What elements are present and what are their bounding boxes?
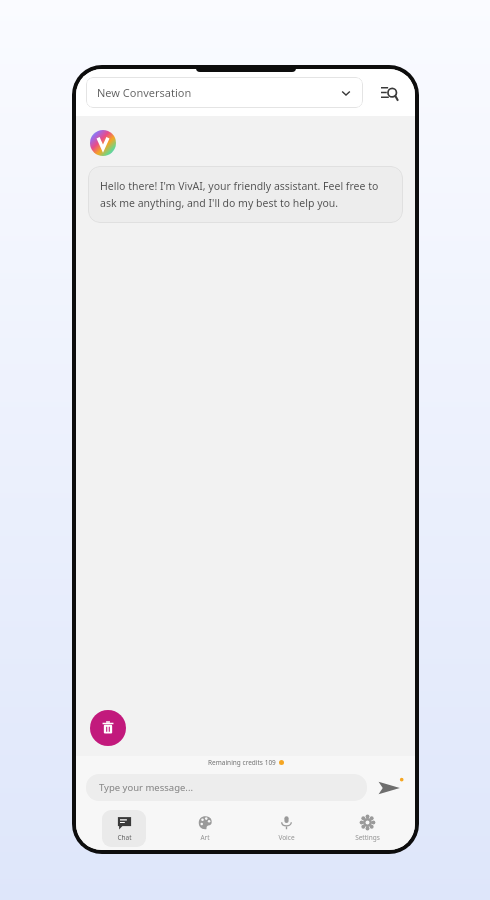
staticText: Chat xyxy=(117,833,132,842)
staticText: Hello there! I'm VivAI, your friendly as… xyxy=(100,179,391,210)
button[interactable]: Send message xyxy=(375,773,405,803)
button[interactable]: Settings xyxy=(333,810,401,847)
button[interactable]: Chat xyxy=(102,810,146,847)
staticText: Voice xyxy=(278,833,295,842)
staticText: Remaining credits 109 xyxy=(208,758,276,767)
button[interactable]: Hello there! I'm VivAI, your friendly as… xyxy=(88,166,403,223)
button[interactable]: Type your message... xyxy=(86,774,367,801)
button[interactable]: Delete conversation xyxy=(90,710,126,746)
staticText: Type your message... xyxy=(99,781,193,794)
button[interactable]: Search conversations xyxy=(375,79,403,107)
staticText: Art xyxy=(200,833,210,842)
button[interactable]: Voice xyxy=(252,810,320,847)
staticText: New Conversation xyxy=(97,85,192,100)
staticText: Settings xyxy=(355,833,380,842)
button[interactable]: Art xyxy=(171,810,239,847)
button[interactable]: New Conversation xyxy=(86,77,363,108)
